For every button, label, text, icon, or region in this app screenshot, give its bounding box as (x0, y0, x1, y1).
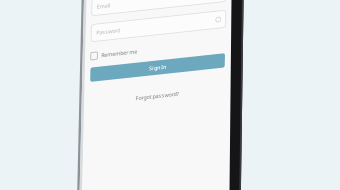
button[interactable]: Sign In (92, 82, 226, 96)
button[interactable]: Remember me (92, 67, 226, 75)
staticText: Email (97, 18, 110, 25)
